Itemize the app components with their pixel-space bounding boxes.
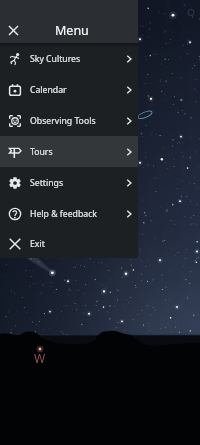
staticText: Observing Tools — [30, 115, 96, 127]
button[interactable]: Exit — [0, 229, 138, 258]
staticText: W — [34, 350, 46, 366]
staticText: Help & feedback — [30, 208, 97, 220]
button[interactable]: Calendar — [0, 74, 138, 105]
staticText: Calendar — [30, 84, 67, 96]
staticText: Sky Cultures — [30, 53, 81, 65]
button[interactable]: Close menu — [0, 17, 26, 43]
button[interactable]: Help & feedback — [0, 198, 138, 229]
staticText: Exit — [30, 238, 45, 250]
button[interactable]: Settings — [0, 167, 138, 198]
staticText: Tours — [30, 146, 53, 158]
staticText: Settings — [30, 177, 64, 189]
button[interactable]: Observing Tools — [0, 105, 138, 136]
button[interactable]: Sky Cultures — [0, 43, 138, 74]
staticText: Menu — [55, 22, 89, 39]
button[interactable]: Tours — [0, 136, 138, 167]
